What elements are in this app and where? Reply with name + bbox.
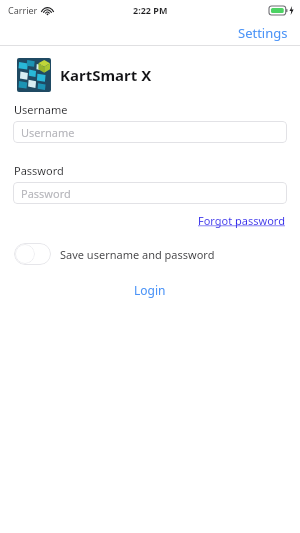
staticText: Login: [134, 282, 166, 298]
staticText: Save username and password: [60, 247, 215, 262]
staticText: 2:22 PM: [133, 4, 168, 16]
staticText: Username: [21, 125, 75, 140]
staticText: Password: [21, 186, 71, 201]
button[interactable]: Password: [13, 182, 287, 204]
staticText: KartSmart X: [60, 65, 152, 85]
button[interactable]: Settings: [226, 20, 300, 45]
staticText: Settings: [238, 24, 288, 41]
button[interactable]: Login: [118, 279, 182, 301]
staticText: Password: [14, 163, 64, 178]
staticText: Username: [14, 102, 68, 117]
button[interactable]: Username: [13, 121, 287, 143]
staticText: Forgot password: [198, 213, 285, 228]
staticText: Carrier: [8, 4, 38, 16]
button[interactable]: Forgot password: [198, 212, 300, 229]
button[interactable]: Save username and password: [14, 243, 51, 265]
